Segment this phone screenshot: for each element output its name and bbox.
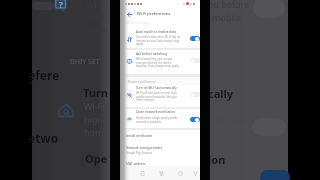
- button[interactable]: Auto switch to mobile data: [120, 30, 200, 34]
- button[interactable]: Back: [175, 168, 185, 178]
- staticText: ion: [208, 152, 226, 167]
- staticText: data: [88, 22, 107, 34]
- staticText: efere: [28, 67, 60, 83]
- staticText: IIHIY SET: [70, 57, 100, 67]
- staticText: home: [84, 126, 109, 138]
- button[interactable]: Turn on Wi-Fi automatically: [120, 86, 200, 90]
- button[interactable]: Toggle: [190, 58, 200, 63]
- staticText: When switching, you can get prompted bef…: [136, 57, 181, 67]
- button[interactable]: Toggle: [190, 117, 200, 122]
- button[interactable]: MAC address: [120, 162, 200, 172]
- button[interactable]: Install certificates: [120, 134, 200, 144]
- staticText: Open network notification: [136, 110, 176, 114]
- button[interactable]: Toggle: [190, 92, 200, 97]
- staticText: MAC address: [126, 162, 146, 166]
- staticText: Network rating provider: [126, 146, 163, 150]
- button[interactable]: Toggle: [190, 36, 200, 41]
- staticText: etwo: [28, 130, 59, 146]
- staticText: ?: [59, 0, 63, 10]
- staticText: cally: [208, 86, 234, 101]
- button[interactable]: Back: [125, 10, 133, 18]
- staticText: mobile: [212, 11, 242, 23]
- staticText: Ask before switching: [136, 52, 168, 56]
- staticText: Wi-Fi preferences: [126, 21, 149, 25]
- button[interactable]: Home: [156, 168, 166, 178]
- staticText: Wi-Fi preferences: [137, 11, 171, 16]
- staticText: Auto switch to mobile data: [136, 30, 176, 34]
- staticText: Use mobile data when Wi-Fi has no intern…: [136, 35, 181, 45]
- staticText: hign: [84, 113, 103, 125]
- staticText: Whe: [86, 0, 106, 10]
- staticText: Turn on Wi-Fi automatically: [136, 86, 177, 90]
- staticText: Network preferences: [128, 80, 156, 84]
- staticText: Wi-Fi: [84, 100, 105, 112]
- staticText: Google Play Services: [126, 151, 152, 155]
- staticText: Install certificates: [126, 134, 153, 138]
- button[interactable]: Network rating provider: [120, 146, 200, 161]
- button[interactable]: Menu: [190, 168, 200, 178]
- staticText: Wi-Fi will turn back on near high-qualit…: [136, 91, 181, 101]
- staticText: Ope: [85, 151, 108, 166]
- button[interactable]: Ask before switching: [120, 52, 200, 56]
- button[interactable]: Open network notification: [120, 110, 200, 114]
- staticText: swit: [88, 10, 105, 22]
- staticText: ntifica: [29, 79, 47, 87]
- button[interactable]: Recents: [137, 168, 147, 178]
- staticText: Notify when a high-quality public networ…: [136, 116, 181, 123]
- staticText: ou before: [208, 0, 250, 10]
- staticText: Turn: [83, 85, 109, 100]
